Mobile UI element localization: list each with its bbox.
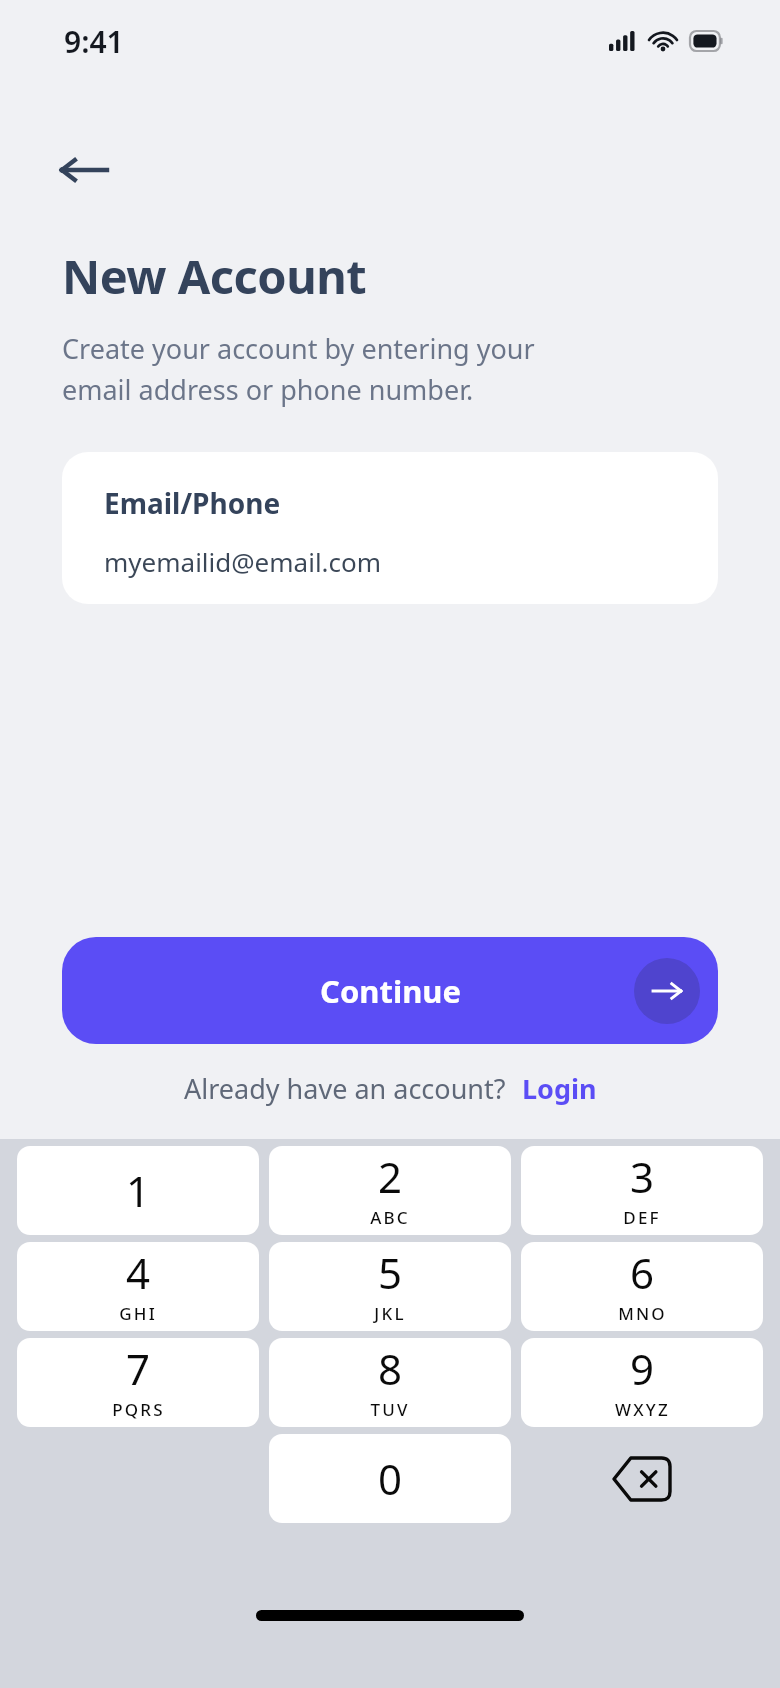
staticText: MNO <box>618 1302 667 1325</box>
staticText: Login <box>522 1070 597 1107</box>
staticText: 2 <box>378 1148 403 1205</box>
staticText: 3 <box>630 1148 655 1205</box>
staticText: Email/Phone <box>104 484 281 522</box>
button[interactable]: 2 <box>269 1146 511 1235</box>
staticText: Continue <box>320 970 461 1012</box>
button[interactable]: 9 <box>521 1338 763 1427</box>
staticText: PQRS <box>112 1398 165 1421</box>
button[interactable]: 8 <box>269 1338 511 1427</box>
button[interactable]: 0 <box>269 1434 511 1523</box>
staticText: 9:41 <box>64 21 124 62</box>
staticText: 4 <box>126 1244 151 1301</box>
staticText: TUV <box>370 1398 410 1421</box>
staticText: 1 <box>126 1162 151 1219</box>
button[interactable]: Back <box>46 140 122 200</box>
button[interactable]: Email/Phone <box>62 452 718 604</box>
staticText: 5 <box>378 1244 403 1301</box>
button[interactable]: Backspace <box>521 1434 763 1523</box>
staticText: ABC <box>370 1206 410 1229</box>
button[interactable]: 6 <box>521 1242 763 1331</box>
staticText: DEF <box>623 1206 661 1229</box>
staticText: 7 <box>126 1340 151 1397</box>
staticText: 6 <box>630 1244 655 1301</box>
staticText: 9 <box>630 1340 655 1397</box>
button[interactable]: 4 <box>17 1242 259 1331</box>
staticText: Already have an account? <box>184 1070 506 1107</box>
staticText: WXYZ <box>615 1398 670 1421</box>
staticText: GHI <box>119 1302 157 1325</box>
button[interactable]: 3 <box>521 1146 763 1235</box>
staticText: 0 <box>378 1450 403 1507</box>
button[interactable]: 7 <box>17 1338 259 1427</box>
staticText: New Account <box>62 244 367 308</box>
staticText: 8 <box>378 1340 403 1397</box>
button[interactable]: Continue <box>62 937 718 1044</box>
button[interactable]: 1 <box>17 1146 259 1235</box>
button[interactable]: Login <box>522 1070 597 1107</box>
staticText: JKL <box>374 1302 406 1325</box>
staticText: myemailid@email.com <box>104 544 382 579</box>
button[interactable]: 5 <box>269 1242 511 1331</box>
staticText: Create your account by entering your ema… <box>62 330 535 408</box>
